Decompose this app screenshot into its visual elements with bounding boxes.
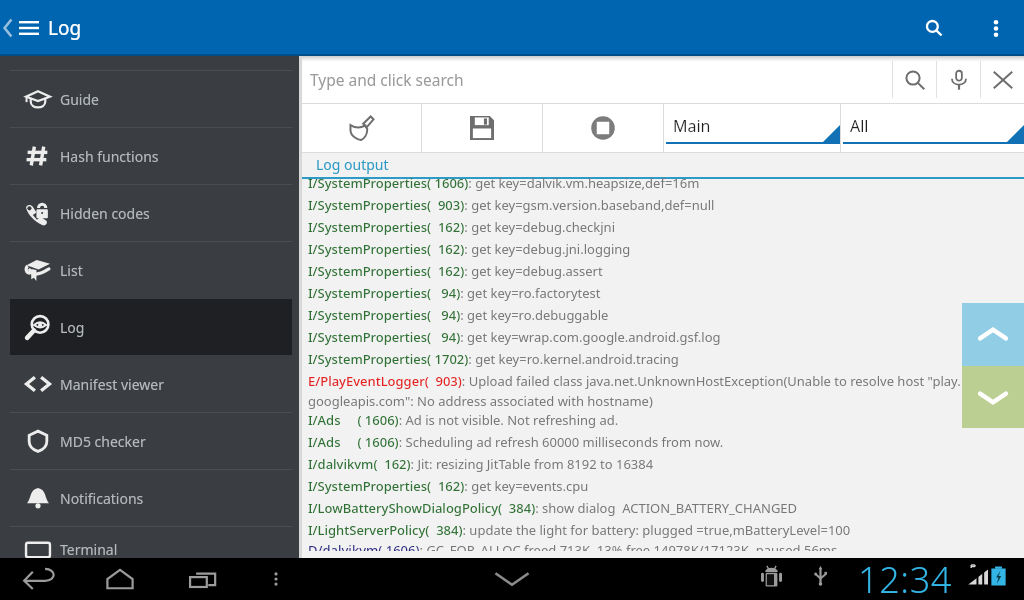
- staticText: I/SystemProperties( 903): get key=gsm.ve…: [308, 196, 715, 214]
- button[interactable]: Hide navigation bar: [490, 558, 534, 600]
- button[interactable]: Search: [901, 0, 967, 56]
- staticText: I/Ads ( 1606): Scheduling ad refresh 600…: [308, 433, 724, 451]
- staticText: I/LowBatteryShowDialogPolicy( 384): show…: [308, 499, 798, 517]
- button[interactable]: More options: [967, 0, 1024, 56]
- button[interactable]: Search: [893, 56, 936, 103]
- staticText: Hidden codes: [60, 204, 150, 223]
- button[interactable]: Scroll to top: [962, 303, 1024, 366]
- staticText: MD5 checker: [60, 432, 146, 451]
- button[interactable]: Clear log: [302, 104, 421, 152]
- button[interactable]: All: [841, 104, 1024, 152]
- button[interactable]: List: [0, 242, 302, 298]
- staticText: List: [60, 261, 83, 280]
- staticText: Log: [60, 318, 85, 337]
- staticText: Hash functions: [60, 147, 159, 166]
- staticText: I/SystemProperties( 94): get key=wrap.co…: [308, 328, 721, 346]
- staticText: Type and click search: [310, 69, 464, 90]
- staticText: Main: [673, 115, 711, 137]
- button[interactable]: Type and click search: [302, 56, 892, 103]
- button[interactable]: Navigate up: [0, 0, 1024, 56]
- staticText: Log: [48, 15, 82, 41]
- button[interactable]: Hidden codes: [0, 185, 302, 241]
- staticText: I/SystemProperties( 162): get key=debug.…: [308, 262, 603, 280]
- button[interactable]: Guide: [0, 71, 302, 127]
- button[interactable]: Back: [18, 558, 62, 600]
- button[interactable]: Menu: [258, 561, 294, 597]
- staticText: I/SystemProperties( 1702): get key=ro.ke…: [308, 350, 679, 368]
- button[interactable]: Hash functions: [0, 128, 302, 184]
- staticText: I/Ads ( 1606): Ad is not visible. Not re…: [308, 411, 619, 429]
- button[interactable]: Terminal: [0, 527, 302, 572]
- button[interactable]: Scroll to bottom: [962, 366, 1024, 428]
- button[interactable]: Stop: [543, 104, 663, 152]
- button[interactable]: Voice search: [937, 56, 980, 103]
- staticText: I/LightServerPolicy( 384): update the li…: [308, 521, 851, 539]
- button[interactable]: Log: [10, 299, 292, 355]
- staticText: I/SystemProperties( 94): get key=ro.debu…: [308, 306, 609, 324]
- button[interactable]: Clear: [981, 56, 1024, 103]
- staticText: I/SystemProperties( 162): get key=debug.…: [308, 218, 615, 236]
- button[interactable]: Home: [98, 558, 142, 600]
- staticText: googleapis.com": No address associated w…: [308, 392, 653, 409]
- button[interactable]: Save log: [422, 104, 542, 152]
- staticText: I/SystemProperties( 162): get key=events…: [308, 477, 589, 495]
- staticText: Log output: [316, 155, 389, 174]
- staticText: D/dalvikvm( 1606): GC_FOR_ALLOC freed 71…: [308, 541, 838, 551]
- staticText: Terminal: [60, 540, 118, 559]
- staticText: Guide: [60, 90, 99, 109]
- button[interactable]: Notifications: [0, 470, 302, 526]
- staticText: Manifest viewer: [60, 375, 164, 394]
- button[interactable]: Recent apps: [181, 558, 225, 600]
- button[interactable]: Main: [664, 104, 840, 152]
- button[interactable]: Manifest viewer: [0, 356, 302, 412]
- button[interactable]: MD5 checker: [0, 413, 302, 469]
- staticText: I/SystemProperties( 94): get key=ro.fact…: [308, 284, 601, 302]
- staticText: E/PlayEventLogger( 903): Upload failed c…: [308, 372, 961, 390]
- staticText: I/dalvikvm( 162): Jit: resizing JitTable…: [308, 455, 654, 473]
- staticText: 12:34: [858, 555, 953, 597]
- staticText: I/SystemProperties( 162): get key=debug.…: [308, 240, 631, 258]
- staticText: I/SystemProperties( 1606): get key=dalvi…: [308, 174, 700, 192]
- staticText: All: [850, 115, 869, 137]
- staticText: Notifications: [60, 489, 144, 508]
